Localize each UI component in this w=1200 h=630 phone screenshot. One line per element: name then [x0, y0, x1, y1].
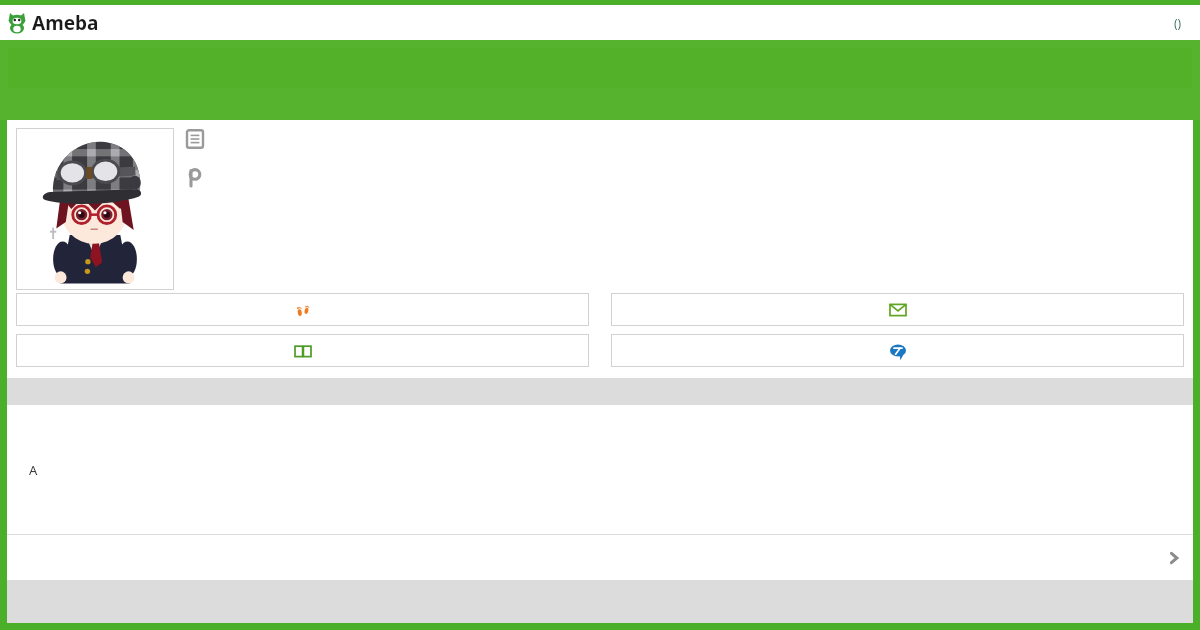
staticText: Ameba [32, 10, 99, 36]
button[interactable]: Ameba [6, 10, 99, 36]
staticText: () [1174, 15, 1182, 31]
staticText: A [29, 461, 38, 479]
button[interactable]: Footprints [16, 293, 589, 326]
button[interactable]: Pigg [185, 167, 205, 187]
button[interactable]: Messages [611, 293, 1184, 326]
button[interactable]: () [1174, 15, 1182, 31]
button[interactable]: Reading list [16, 334, 589, 367]
button[interactable]: Blog articles [185, 129, 205, 149]
button[interactable]: Profile avatar [16, 128, 174, 290]
button[interactable]: More [7, 535, 1193, 580]
button[interactable]: Ameblo [611, 334, 1184, 367]
